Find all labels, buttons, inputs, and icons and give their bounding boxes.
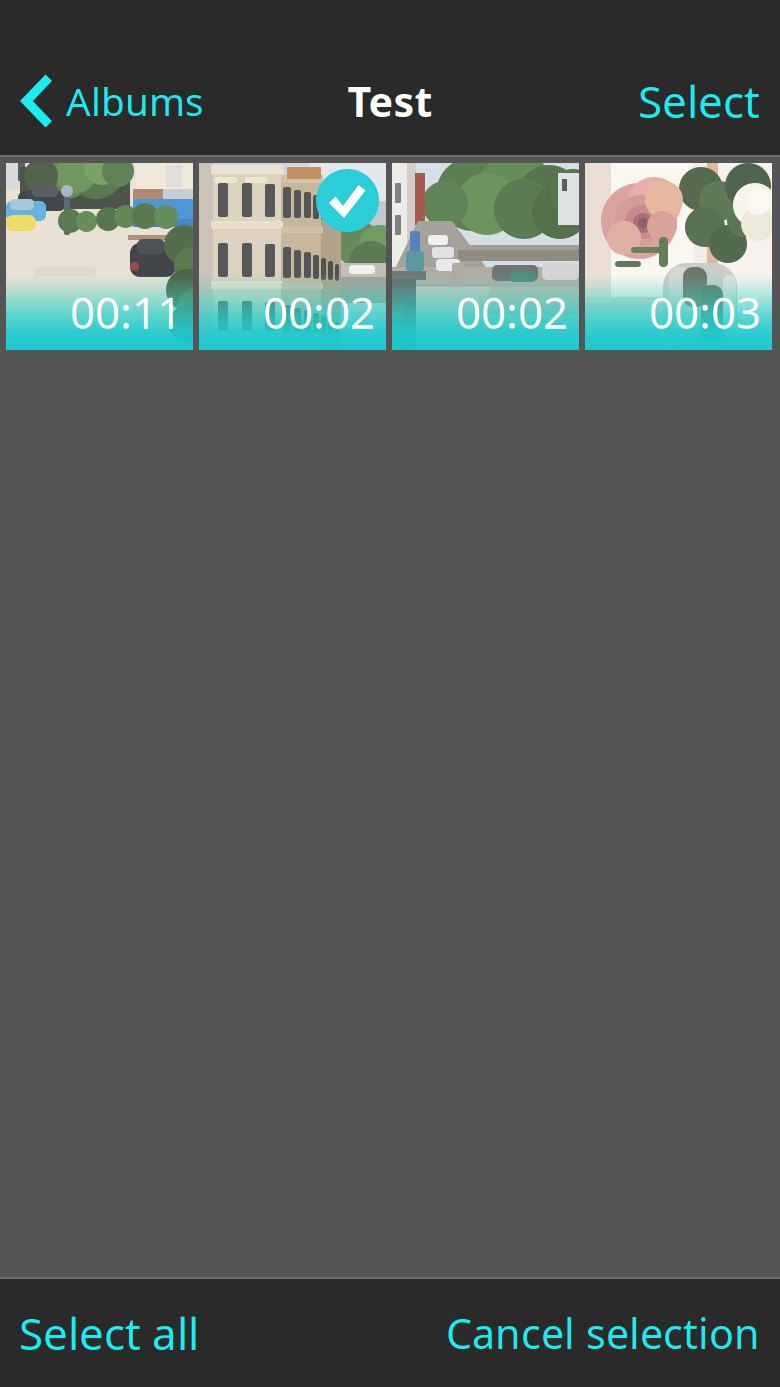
staticText: 00:02 [456,283,568,341]
staticText: 00:03 [649,283,761,341]
button[interactable]: 00:03 [585,163,772,350]
button[interactable]: Select [618,47,780,155]
staticText: Albums [66,75,204,127]
staticText: Test [347,74,432,128]
button[interactable]: 00:02 [392,163,579,350]
staticText: Cancel selection [446,1306,760,1360]
button[interactable]: Cancel selection [426,1279,780,1387]
button[interactable]: 00:02 [199,163,386,350]
button[interactable]: Albums [0,47,214,155]
staticText: Select [638,72,760,130]
staticText: 00:11 [70,283,182,341]
button[interactable]: 00:11 [6,163,193,350]
button[interactable]: Select all [0,1279,218,1387]
staticText: 00:02 [263,283,375,341]
staticText: Select all [19,1304,199,1362]
